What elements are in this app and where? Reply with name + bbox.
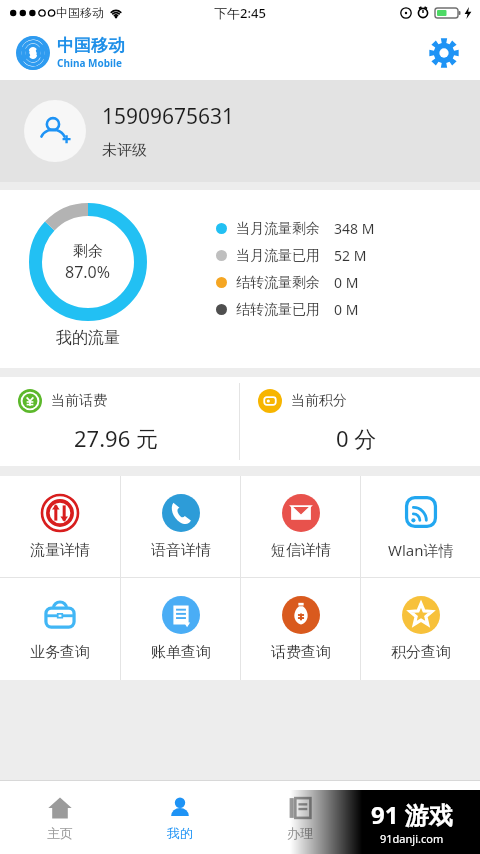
staticText: 中国移动 — [56, 5, 104, 20]
button[interactable]: 流量详情 — [0, 476, 120, 577]
button[interactable]: Settings — [422, 31, 466, 75]
button[interactable]: 办理 — [240, 781, 360, 854]
button[interactable]: 话费查询 — [241, 578, 360, 680]
staticText: 未评级 — [102, 141, 147, 160]
button[interactable]: 短信详情 — [241, 476, 360, 577]
staticText: Wlan详情 — [388, 540, 454, 560]
button[interactable]: 业务查询 — [0, 578, 120, 680]
staticText: 当前话费 — [51, 392, 107, 410]
staticText: 91 游戏 — [371, 798, 453, 831]
staticText: 积分查询 — [391, 643, 451, 662]
button[interactable]: Wlan详情 — [361, 476, 480, 577]
staticText: 充值 — [407, 825, 433, 841]
staticText: 业务查询 — [30, 643, 90, 662]
staticText: 剩余 — [73, 242, 103, 261]
staticText: 主页 — [47, 825, 73, 841]
button[interactable]: 账单查询 — [121, 578, 240, 680]
staticText: 348 M — [334, 219, 375, 238]
staticText: 27.96 元 — [74, 423, 158, 453]
staticText: 15909675631 — [102, 102, 235, 131]
staticText: 语音详情 — [151, 541, 211, 560]
staticText: 办理 — [287, 825, 313, 841]
button[interactable]: 当前积分 — [240, 377, 480, 466]
staticText: 中国移动 — [57, 35, 125, 56]
staticText: 我的流量 — [56, 328, 120, 348]
staticText: 0 M — [334, 273, 359, 292]
staticText: 账单查询 — [151, 643, 211, 662]
button[interactable]: 当前话费 — [0, 377, 239, 466]
button[interactable]: 15909675631 — [0, 80, 480, 182]
staticText: 下午2:45 — [214, 4, 266, 22]
staticText: 52 M — [334, 246, 367, 265]
button[interactable]: 积分查询 — [361, 578, 480, 680]
staticText: 0 分 — [336, 423, 377, 453]
staticText: 流量详情 — [30, 541, 90, 560]
staticText: China Mobile — [57, 56, 122, 70]
button[interactable]: 我的 — [120, 781, 240, 854]
button[interactable]: 主页 — [0, 781, 120, 854]
staticText: 短信详情 — [271, 541, 331, 560]
staticText: 结转流量已用 — [236, 301, 320, 319]
staticText: 结转流量剩余 — [236, 274, 320, 292]
staticText: 0 M — [334, 300, 359, 319]
staticText: 话费查询 — [271, 643, 331, 662]
staticText: 87.0% — [65, 261, 111, 283]
staticText: 当前积分 — [291, 392, 347, 410]
button[interactable]: 语音详情 — [121, 476, 240, 577]
staticText: 我的 — [167, 825, 193, 841]
button[interactable]: 充值 — [360, 781, 480, 854]
staticText: 当月流量剩余 — [236, 220, 320, 238]
staticText: 当月流量已用 — [236, 247, 320, 265]
staticText: 91danji.com — [380, 831, 444, 846]
